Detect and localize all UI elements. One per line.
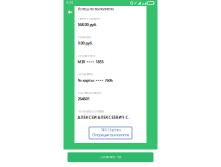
staticText: 568.00 руб. (77, 22, 96, 27)
staticText: 0.00 руб. (77, 40, 92, 46)
staticText: СОХРАНИТЬ ЧЕК (99, 155, 121, 159)
staticText: 8:05 (66, 1, 73, 5)
button[interactable]: СОХРАНИТЬ ЧЕК (67, 152, 153, 162)
staticText: Получатель (77, 72, 92, 76)
staticText: Операция выполнена (92, 132, 129, 137)
staticText: Код авторизации (77, 91, 101, 94)
staticText: АЛЕКСЕЙ АЛЕКСЕЕВИЧ С. (77, 115, 129, 120)
staticText: Комиссия (77, 35, 91, 39)
staticText: 264601 (77, 96, 89, 101)
staticText: Получатель платежа (77, 110, 103, 113)
staticText: № карты: •••• 7606 (77, 77, 112, 83)
staticText: ПАО Сбербанк (100, 128, 120, 132)
button[interactable]: Back (63, 6, 76, 18)
staticText: Сумма операции (77, 17, 100, 20)
staticText: MIR •••• 1855 (77, 59, 103, 64)
staticText: Успешно выполнено (77, 6, 113, 11)
staticText: Отправитель (77, 54, 94, 57)
